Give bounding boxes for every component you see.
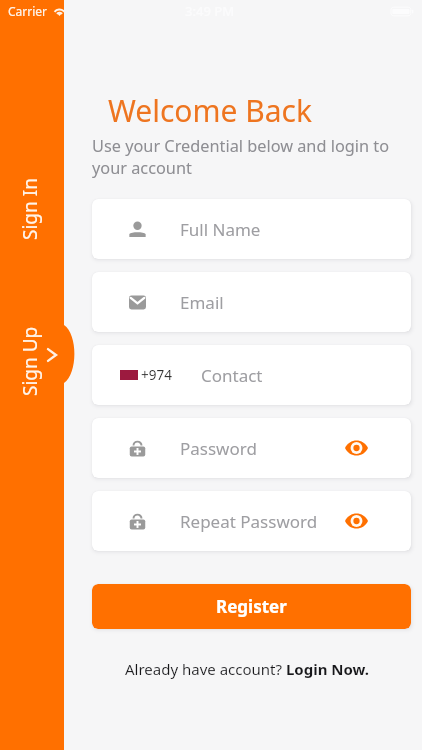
button[interactable]: Sign In — [17, 178, 43, 240]
button[interactable]: Email — [92, 272, 411, 332]
staticText: +974 — [141, 366, 172, 384]
staticText: Already have account? Login Now. — [125, 659, 370, 679]
button[interactable]: Already have account? Login Now. — [88, 657, 407, 681]
staticText: Contact — [201, 364, 263, 387]
button[interactable]: Sign Up — [17, 326, 43, 396]
staticText: Sign In — [17, 178, 43, 240]
staticText: Register — [216, 595, 287, 618]
staticText: Use your Credential below and login to y… — [92, 135, 390, 179]
staticText: Sign Up — [17, 326, 43, 396]
button[interactable]: Repeat Password — [92, 491, 411, 551]
button[interactable]: +974 — [92, 345, 411, 405]
button[interactable]: Full Name — [92, 199, 411, 259]
button[interactable]: Show password — [341, 506, 371, 536]
staticText: Full Name — [180, 218, 261, 241]
staticText: Password — [180, 437, 257, 460]
button[interactable]: Show password — [341, 433, 371, 463]
staticText: Email — [180, 291, 224, 314]
button[interactable]: Password — [92, 418, 411, 478]
button[interactable]: Register — [92, 584, 411, 629]
staticText: Repeat Password — [180, 510, 318, 533]
staticText: Carrier — [8, 3, 48, 19]
other: Next — [47, 348, 57, 362]
staticText: Welcome Back — [108, 90, 313, 131]
